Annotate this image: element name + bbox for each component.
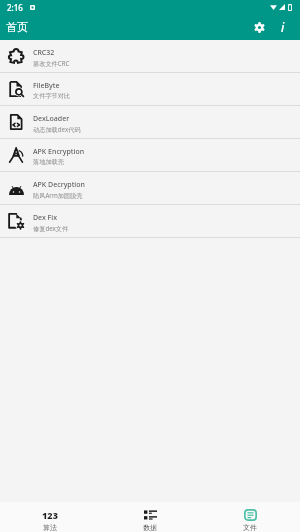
button[interactable]: CRC32 <box>0 40 300 73</box>
button[interactable]: Dex Fix <box>0 205 300 238</box>
staticText: 动态加载dex代码 <box>33 125 81 133</box>
staticText: 2:16 <box>7 2 23 13</box>
staticText: i <box>281 19 285 35</box>
staticText: 数据 <box>143 523 157 532</box>
button[interactable]: 123 <box>0 502 100 532</box>
button[interactable]: Info <box>273 17 293 37</box>
staticText: FileByte <box>33 81 60 91</box>
staticText: 123 <box>42 509 58 521</box>
staticText: 文件 <box>243 523 257 532</box>
staticText: 算法 <box>43 523 57 532</box>
staticText: 首页 <box>6 20 28 34</box>
button[interactable]: APK Encryption <box>0 139 300 172</box>
button[interactable]: APK Decryption <box>0 172 300 205</box>
staticText: 文件字节对比 <box>33 92 71 100</box>
button[interactable]: FileByte <box>0 73 300 106</box>
button[interactable]: DexLoader <box>0 106 300 139</box>
button[interactable]: Settings <box>249 17 269 37</box>
staticText: 篡改文件CRC <box>33 59 70 67</box>
staticText: 陆风Arm加固脱壳 <box>33 191 83 199</box>
staticText: APK Decryption <box>33 180 85 190</box>
staticText: 修复dex文件 <box>33 224 69 232</box>
staticText: APK Encryption <box>33 147 85 157</box>
staticText: 落地加载壳 <box>33 158 64 166</box>
staticText: CRC32 <box>33 48 55 58</box>
button[interactable]: 数据 <box>100 502 200 532</box>
staticText: DexLoader <box>33 114 70 124</box>
staticText: Dex Fix <box>33 213 58 223</box>
button[interactable]: 文件 <box>200 502 300 532</box>
